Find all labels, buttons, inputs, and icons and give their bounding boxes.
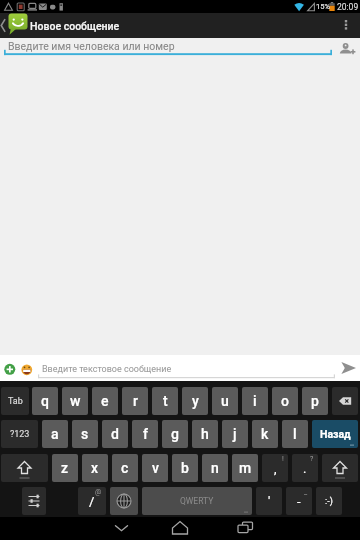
staticText: z (61, 460, 69, 476)
button[interactable]: c (112, 454, 138, 482)
button[interactable] (226, 517, 262, 540)
button[interactable]: a (42, 420, 68, 448)
staticText: . (303, 461, 307, 476)
button[interactable] (322, 454, 358, 482)
button[interactable]: i (242, 387, 268, 415)
button[interactable]: j (222, 420, 248, 448)
button[interactable]: , (262, 454, 288, 482)
button[interactable]: w (62, 387, 88, 415)
button[interactable]: p (302, 387, 328, 415)
staticText: t (163, 393, 168, 409)
button[interactable]: Назад (312, 420, 358, 448)
button[interactable]: k (252, 420, 278, 448)
button[interactable] (1, 454, 48, 482)
button[interactable]: s (72, 420, 98, 448)
staticText: o (281, 393, 289, 409)
button[interactable]: r (122, 387, 148, 415)
button[interactable]: b (172, 454, 198, 482)
button[interactable] (336, 40, 358, 58)
button[interactable] (110, 487, 138, 515)
button[interactable]: x (82, 454, 108, 482)
staticText: u (221, 393, 229, 409)
button[interactable]: d (102, 420, 128, 448)
button[interactable]: QWERTY (142, 487, 252, 515)
button[interactable] (22, 487, 46, 515)
button[interactable]: q (32, 387, 58, 415)
staticText: x (91, 460, 99, 476)
button[interactable]: v (142, 454, 168, 482)
button[interactable]: g (162, 420, 188, 448)
staticText: m (239, 460, 252, 476)
button[interactable] (336, 355, 360, 381)
staticText: i (253, 393, 257, 409)
staticText: / (89, 494, 95, 509)
staticText: k (261, 426, 269, 442)
button[interactable] (162, 517, 198, 540)
button[interactable]: Новое сообщение (30, 20, 120, 32)
staticText: 15% (316, 2, 330, 11)
button[interactable]: n (202, 454, 228, 482)
staticText: :-) (325, 496, 333, 507)
staticText: _ (304, 488, 308, 496)
button[interactable] (332, 387, 358, 415)
staticText: v (152, 460, 159, 476)
staticText: ! (282, 455, 284, 463)
button[interactable]: y (182, 387, 208, 415)
button[interactable] (102, 517, 138, 540)
button[interactable]: e (92, 387, 118, 415)
staticText: e (101, 393, 109, 409)
staticText: QWERTY (180, 496, 214, 506)
staticText: w (70, 393, 81, 409)
button[interactable]: Tab (1, 387, 29, 415)
staticText: q (41, 393, 49, 409)
button[interactable]: u (212, 387, 238, 415)
staticText: d (111, 426, 119, 442)
button[interactable] (19, 355, 35, 381)
staticText: f (143, 426, 148, 442)
staticText: ? (310, 455, 314, 463)
staticText: y (192, 393, 199, 409)
staticText: , (274, 461, 277, 476)
staticText: p (311, 393, 319, 409)
button[interactable] (0, 355, 17, 381)
button[interactable]: ' (256, 487, 282, 515)
staticText: l (293, 426, 297, 442)
staticText: n (211, 460, 219, 476)
button[interactable]: t (152, 387, 178, 415)
button[interactable]: - (286, 487, 312, 515)
staticText: Введите текстовое сообщение (42, 364, 172, 375)
staticText: Tab (8, 396, 23, 407)
button[interactable]: m (232, 454, 258, 482)
staticText: j (233, 426, 237, 442)
button[interactable] (36, 355, 336, 381)
staticText: @ (95, 488, 102, 496)
button[interactable]: h (192, 420, 218, 448)
button[interactable]: o (272, 387, 298, 415)
button[interactable]: l (282, 420, 308, 448)
staticText: ' (268, 494, 271, 509)
button[interactable]: / (78, 487, 106, 515)
staticText: r (133, 393, 138, 409)
staticText: - (297, 494, 301, 509)
button[interactable]: ?123 (1, 420, 38, 448)
button[interactable] (336, 13, 360, 38)
staticText: Введите имя человека или номер (8, 40, 175, 52)
staticText: ?123 (10, 429, 30, 440)
button[interactable]: f (132, 420, 158, 448)
button[interactable]: . (292, 454, 318, 482)
staticText: s (81, 426, 89, 442)
button[interactable]: z (52, 454, 78, 482)
button[interactable] (0, 38, 360, 62)
staticText: g (171, 426, 179, 442)
staticText: b (181, 460, 189, 476)
staticText: h (201, 426, 209, 442)
button[interactable]: :-) (316, 487, 342, 515)
staticText: Назад (320, 428, 351, 440)
staticText: 20:09 (337, 2, 359, 12)
staticText: a (51, 426, 59, 442)
staticText: c (121, 460, 129, 476)
